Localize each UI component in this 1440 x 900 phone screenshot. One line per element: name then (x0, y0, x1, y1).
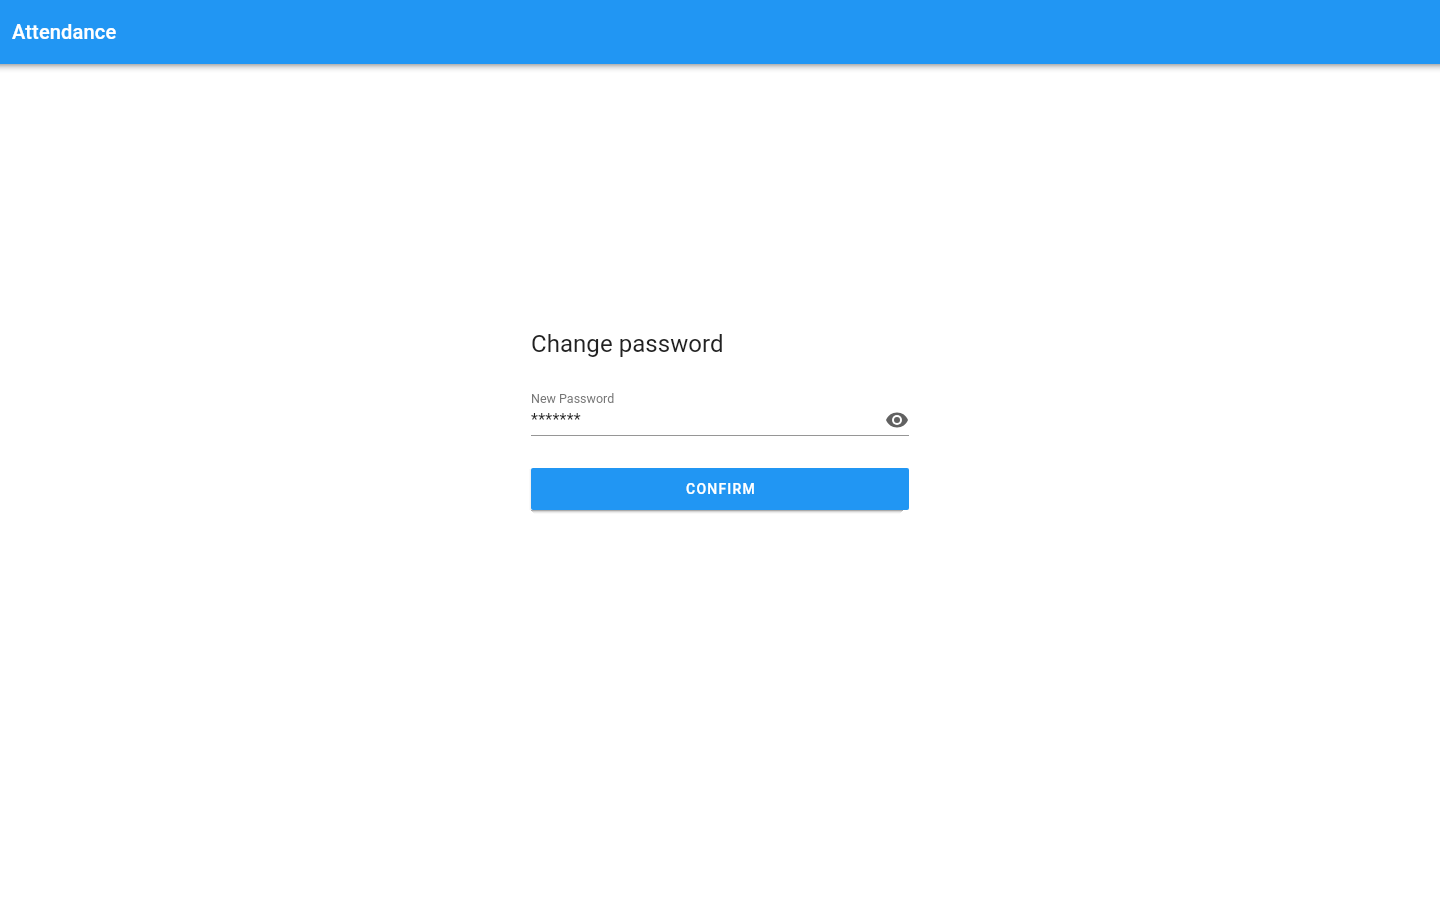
button[interactable]: CONFIRM (531, 468, 909, 510)
staticText: Change password (531, 330, 724, 358)
staticText: ******* (531, 410, 581, 429)
staticText: New Password (531, 391, 615, 406)
staticText: CONFIRM (686, 481, 756, 497)
staticText: Attendance (12, 20, 117, 43)
button[interactable]: Show password (877, 400, 917, 440)
